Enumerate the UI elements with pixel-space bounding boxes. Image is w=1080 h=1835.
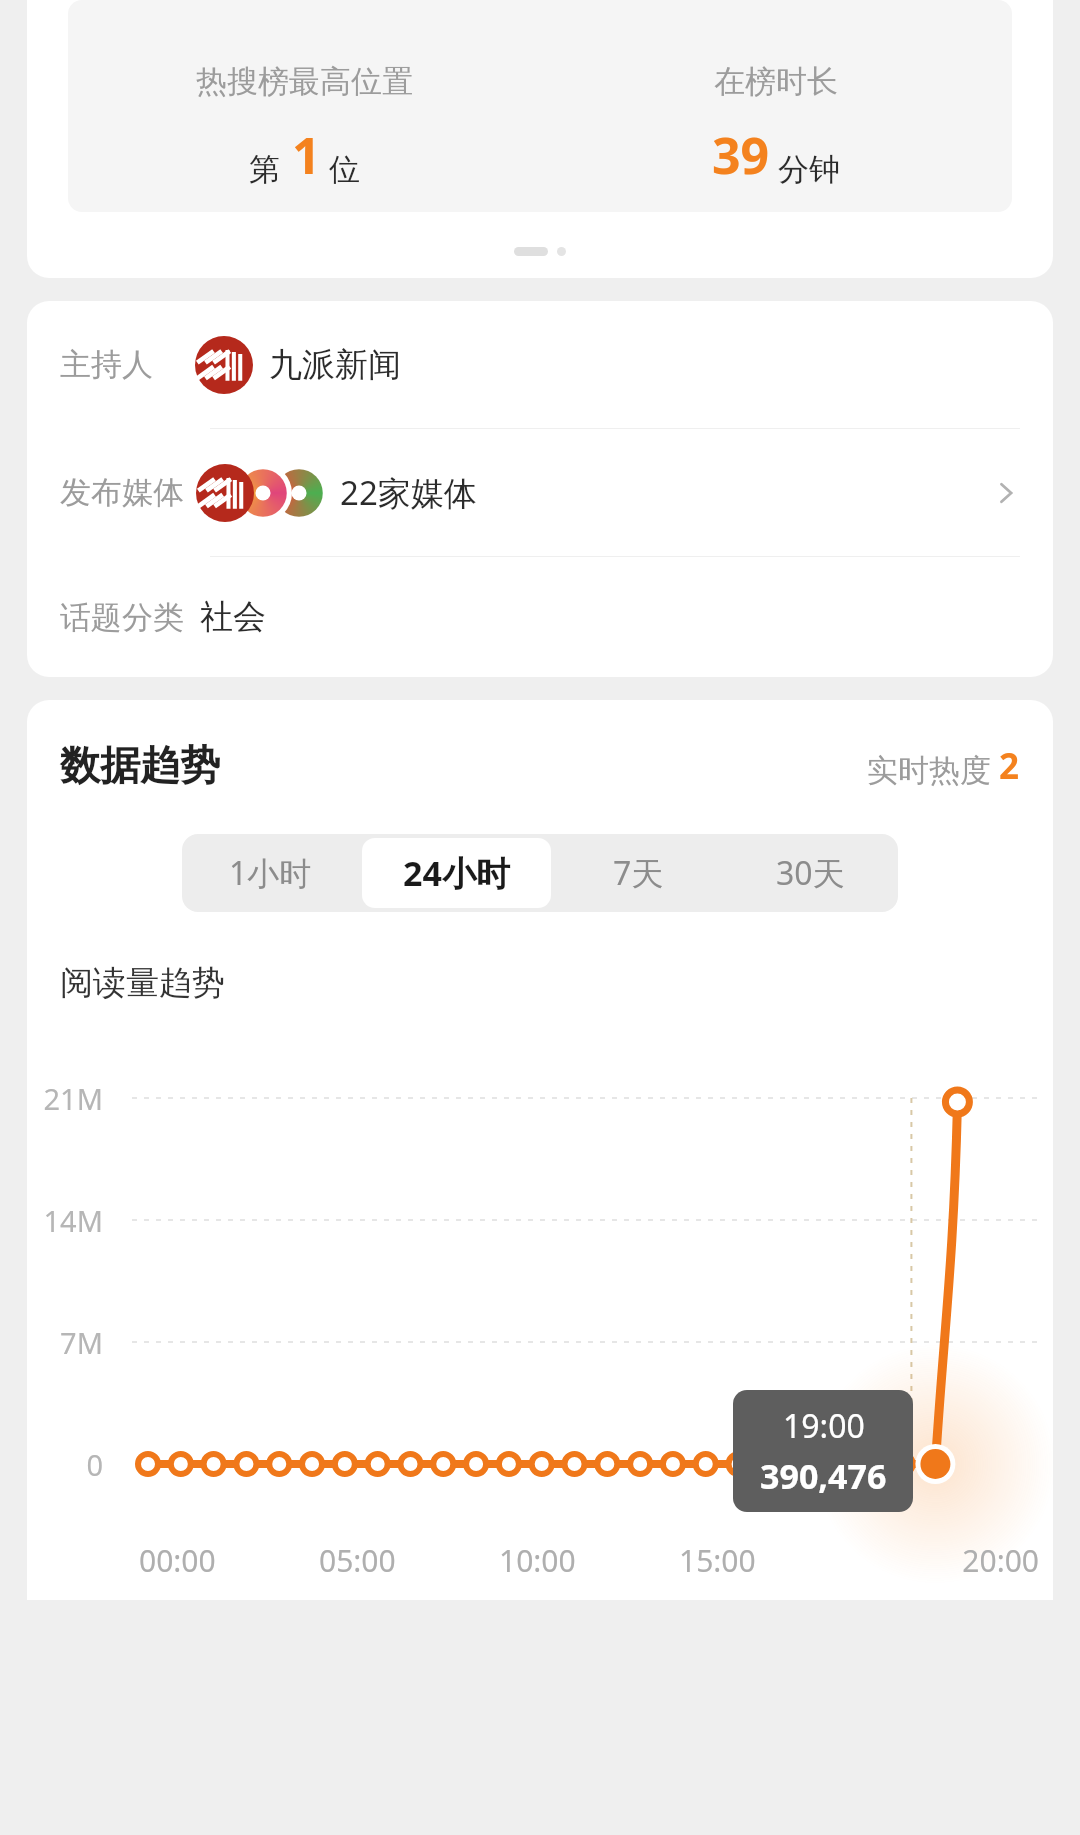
staticText: 19:00 [783,1404,865,1448]
button[interactable]: 话题分类 [27,557,1053,677]
staticText: 0 [27,1445,103,1484]
staticText: 社会 [200,596,266,638]
staticText: 话题分类 [60,598,184,637]
staticText: 7M [27,1323,103,1362]
staticText: 1小时 [229,851,312,895]
staticText: 实时热度 [867,751,991,790]
button[interactable]: 24小时 [362,838,551,908]
staticText: 位 [329,150,360,189]
staticText: 1 [292,121,321,189]
button[interactable]: 1小时 [186,838,354,908]
staticText: 热搜榜最高位置 [196,62,413,101]
staticText: 00:00 [139,1540,319,1581]
button[interactable]: 发布媒体 [27,429,1053,556]
staticText: 发布媒体 [60,473,184,512]
button[interactable] [514,247,566,256]
staticText: 数据趋势 [60,740,220,790]
staticText: 在榜时长 [714,62,838,101]
staticText: 10:00 [499,1540,679,1581]
staticText: 39 [712,121,770,189]
staticText: 14M [27,1201,103,1240]
staticText: 九派新闻 [269,344,401,386]
staticText: 15:00 [679,1540,859,1581]
staticText: 30天 [776,851,845,895]
other: View media list [991,476,1025,510]
staticText: 2 [999,742,1020,790]
staticText: 主持人 [60,345,153,384]
button[interactable]: 7天 [559,838,718,908]
button[interactable]: 30天 [726,838,894,908]
staticText: 05:00 [319,1540,499,1581]
staticText: 第 [249,150,280,189]
staticText: 24小时 [403,850,510,896]
staticText: 390,476 [760,1453,887,1499]
staticText: 阅读量趋势 [60,962,225,1004]
staticText: 7天 [613,851,664,895]
staticText: 20:00 [859,1540,1039,1581]
button[interactable]: 主持人 [27,301,1053,428]
staticText: 22家媒体 [340,470,477,515]
staticText: 分钟 [778,150,840,189]
staticText: 21M [27,1079,103,1118]
